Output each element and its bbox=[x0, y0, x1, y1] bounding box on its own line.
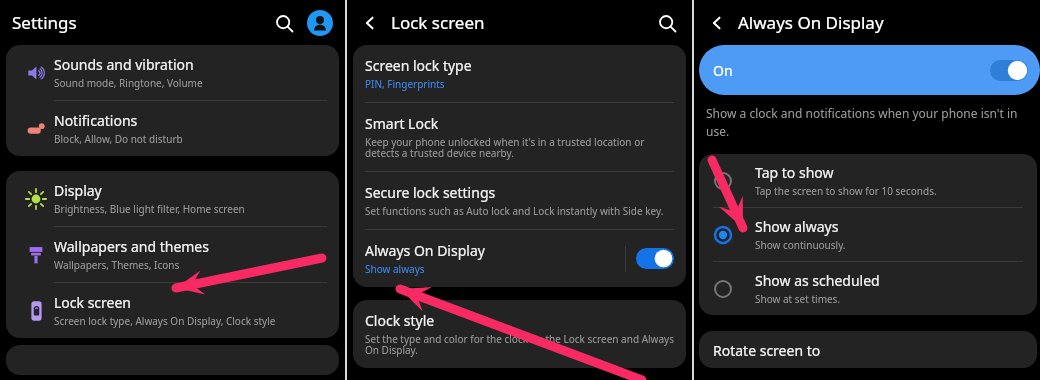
button[interactable]: Smart Lock bbox=[353, 103, 686, 171]
button[interactable]: Radio bbox=[713, 279, 733, 299]
button[interactable]: Back bbox=[357, 10, 383, 36]
staticText: Lock screen bbox=[54, 293, 132, 312]
staticText: Show continuously. bbox=[755, 238, 846, 252]
staticText: Notifications bbox=[54, 111, 138, 130]
staticText: Smart Lock bbox=[365, 114, 439, 133]
staticText: Sounds and vibration bbox=[54, 55, 194, 74]
button[interactable]: Secure lock settings bbox=[353, 172, 686, 229]
staticText: Screen lock type, Always On Display, Clo… bbox=[54, 314, 276, 328]
button[interactable]: Radio bbox=[699, 262, 1037, 315]
staticText: Set the type and color for the clock on … bbox=[365, 332, 674, 357]
staticText: Show at set times. bbox=[755, 292, 841, 306]
staticText: On bbox=[713, 61, 733, 80]
button[interactable]: Lock screen bbox=[6, 283, 339, 338]
button[interactable]: Radio bbox=[699, 154, 1037, 207]
staticText: Sound mode, Ringtone, Volume bbox=[54, 76, 203, 90]
button[interactable]: Radio bbox=[699, 208, 1037, 261]
button[interactable]: Wallpapers and themes bbox=[6, 227, 339, 282]
staticText: Secure lock settings bbox=[365, 183, 496, 202]
button[interactable]: Always On Display bbox=[353, 230, 686, 287]
button[interactable]: Clock style bbox=[353, 300, 686, 368]
staticText: Show a clock and notifications when your… bbox=[706, 105, 1028, 140]
staticText: Wallpapers, Themes, Icons bbox=[54, 258, 180, 272]
staticText: Screen lock type bbox=[365, 56, 472, 75]
staticText: Show always bbox=[365, 262, 425, 276]
staticText: Brightness, Blue light filter, Home scre… bbox=[54, 202, 245, 216]
staticText: Clock style bbox=[365, 311, 435, 330]
button[interactable]: Radio bbox=[713, 225, 733, 245]
button[interactable]: On bbox=[699, 45, 1040, 95]
button[interactable]: Notifications bbox=[6, 101, 339, 156]
staticText: Always On Display bbox=[365, 241, 485, 260]
staticText: Lock screen bbox=[391, 11, 485, 34]
staticText: Always On Display bbox=[738, 11, 884, 34]
button[interactable]: Search bbox=[271, 10, 297, 36]
staticText: Show as scheduled bbox=[755, 271, 880, 290]
button[interactable]: Account bbox=[307, 10, 333, 36]
button[interactable]: Back bbox=[704, 10, 730, 36]
staticText: Display bbox=[54, 181, 102, 200]
staticText: Tap the screen to show for 10 seconds. bbox=[755, 184, 937, 198]
button[interactable]: Screen lock type bbox=[353, 45, 686, 102]
button[interactable]: Sounds and vibration bbox=[6, 45, 339, 100]
staticText: Set functions such as Auto lock and Lock… bbox=[365, 204, 664, 218]
staticText: Wallpapers and themes bbox=[54, 237, 209, 256]
button[interactable]: Search bbox=[654, 10, 680, 36]
button[interactable]: Display bbox=[6, 171, 339, 226]
staticText: Settings bbox=[12, 11, 77, 34]
staticText: Block, Allow, Do not disturb bbox=[54, 132, 183, 146]
staticText: PIN, Fingerprints bbox=[365, 77, 445, 91]
staticText: Tap to show bbox=[755, 163, 834, 182]
staticText: Rotate screen to bbox=[713, 341, 821, 360]
button[interactable]: Radio bbox=[713, 171, 733, 191]
staticText: Show always bbox=[755, 217, 839, 236]
button[interactable]: Toggle bbox=[636, 248, 674, 269]
staticText: Keep your phone unlocked when it's in a … bbox=[365, 135, 674, 160]
